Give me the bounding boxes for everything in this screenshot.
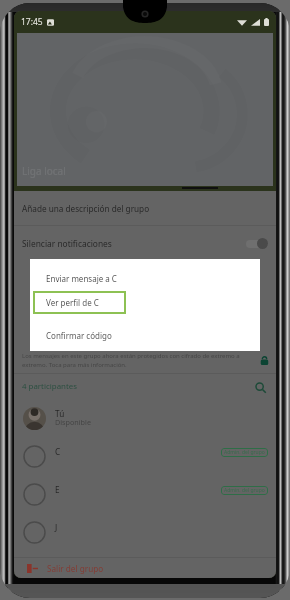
staticText: Silenciar notificaciones [22,238,112,249]
staticText: Admin. del grupo [224,487,265,494]
staticText: Ver perfil de C [46,297,99,308]
button[interactable]: Añade una descripción del grupo [14,191,276,225]
staticText: Añade una descripción del grupo [22,203,150,214]
staticText: Enviar mensaje a C [46,273,117,284]
staticText: Admin. del grupo [224,449,265,456]
button[interactable]: Enviar mensaje a C [30,265,260,291]
staticText: C [55,446,61,457]
staticText: Confirmar código [46,330,112,341]
button[interactable]: Ver perfil de C [30,289,260,315]
staticText: Liga local [22,164,66,178]
staticText: Tú [55,408,65,419]
staticText: 4 participantes [22,381,78,392]
staticText: Los mensajes en este grupo ahora están p… [22,352,254,368]
button[interactable]: Tú [14,399,276,437]
button[interactable]: Confirmar código [30,322,260,348]
button[interactable]: E [14,475,276,513]
staticText: Disponible [55,417,91,427]
button[interactable]: C [14,437,276,475]
button[interactable]: Silenciar notificaciones [14,226,276,260]
staticText: Salir del grupo [47,563,104,574]
button[interactable]: Salir del grupo [14,558,276,578]
staticText: J [55,522,58,533]
staticText: 17:45 [21,16,43,28]
button[interactable]: Buscar [252,379,268,395]
button[interactable]: Los mensajes en este grupo ahora están p… [14,352,276,368]
staticText: E [55,484,60,495]
